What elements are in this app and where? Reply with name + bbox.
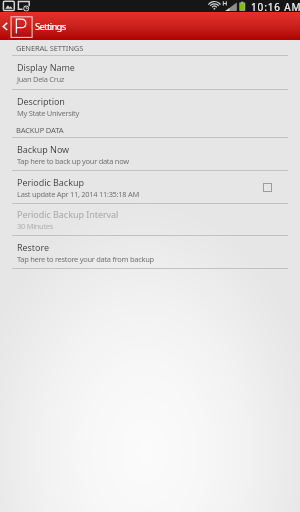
staticText: Last update Apr 11, 2014 11:35:18 AM	[17, 189, 139, 199]
button[interactable]: Periodic Backup	[0, 171, 300, 203]
button[interactable]: Enable periodic backup	[259, 179, 275, 195]
staticText: Tap here to restore your data from backu…	[17, 254, 154, 264]
staticText: Settings	[35, 20, 66, 33]
staticText: My State University	[17, 108, 80, 118]
button[interactable]: Periodic Backup Interval	[0, 204, 300, 235]
staticText: GENERAL SETTINGS	[16, 43, 84, 53]
button[interactable]: Backup Now	[0, 138, 300, 170]
button[interactable]: Description	[0, 90, 300, 123]
button[interactable]: Navigate up	[0, 12, 33, 40]
staticText: BACKUP DATA	[16, 125, 64, 135]
staticText: Display Name	[17, 61, 75, 73]
button[interactable]: Restore	[0, 236, 300, 268]
staticText: 10:16 AM	[251, 0, 300, 12]
staticText: Backup Now	[17, 143, 70, 155]
staticText: Description	[17, 95, 65, 107]
staticText: 30 Minutes	[17, 221, 54, 231]
staticText: Tap here to back up your data now	[17, 156, 129, 166]
staticText: Periodic Backup Interval	[17, 208, 119, 220]
staticText: Periodic Backup	[17, 176, 84, 188]
button[interactable]: Display Name	[0, 56, 300, 89]
staticText: Juan Dela Cruz	[17, 74, 65, 84]
staticText: Restore	[17, 241, 49, 253]
